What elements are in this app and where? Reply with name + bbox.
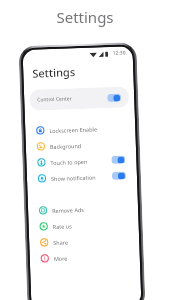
button[interactable]: Toggle: [112, 171, 126, 180]
button[interactable]: Touch to open: [31, 151, 132, 171]
staticText: Share: [53, 238, 68, 246]
button[interactable]: Share: [34, 231, 134, 251]
staticText: Background: [50, 142, 82, 150]
button[interactable]: Background: [31, 135, 131, 155]
staticText: Remove Ads: [52, 206, 84, 214]
button[interactable]: Show notification: [32, 167, 132, 187]
button[interactable]: More: [34, 247, 135, 267]
button[interactable]: Remove Ads: [33, 199, 133, 219]
button[interactable]: Rate us: [33, 215, 134, 235]
staticText: Rate us: [53, 222, 73, 230]
button[interactable]: Lockscreen Enable: [30, 119, 130, 139]
staticText: Show notification: [51, 173, 96, 182]
button[interactable]: Toggle: [107, 94, 121, 102]
staticText: Settings: [32, 64, 75, 81]
staticText: 12:30: [112, 49, 126, 57]
staticText: Settings: [56, 7, 114, 27]
button[interactable]: Toggle: [111, 155, 125, 164]
staticText: More: [54, 254, 68, 262]
button[interactable]: Control Center: [29, 86, 130, 111]
staticText: Control Center: [37, 95, 72, 103]
staticText: Touch to open: [50, 158, 87, 166]
staticText: Lockscreen Enable: [49, 125, 97, 134]
